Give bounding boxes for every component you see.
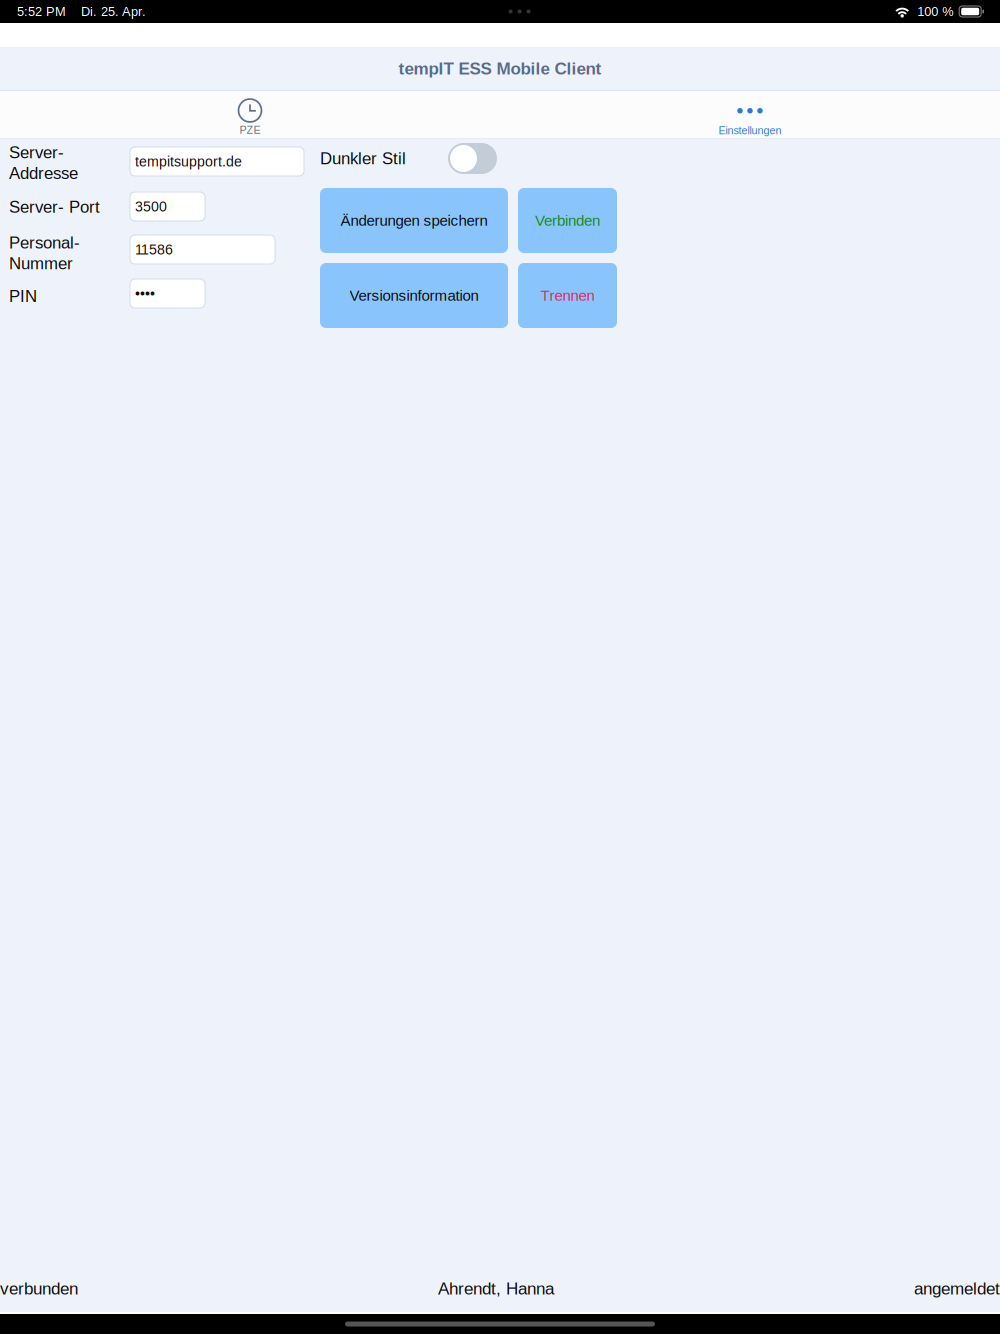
staticText: tempitsupport.de <box>135 154 242 169</box>
staticText: •••• <box>135 286 155 301</box>
staticText: 100 % <box>917 4 953 19</box>
button[interactable]: Änderungen speichern <box>320 188 508 253</box>
button[interactable]: PZE <box>188 91 312 138</box>
staticText: Personal- <box>9 233 80 252</box>
staticText: PZE <box>239 124 260 136</box>
staticText: Server- <box>9 143 64 162</box>
button[interactable]: Versionsinformation <box>320 263 508 328</box>
staticText: PIN <box>9 287 37 306</box>
staticText: 11586 <box>135 242 173 257</box>
staticText: Addresse <box>9 164 78 183</box>
staticText: angemeldet <box>914 1279 1000 1298</box>
staticText: 3500 <box>135 199 167 214</box>
button[interactable]: Trennen <box>518 263 617 328</box>
staticText: tempIT ESS Mobile Client <box>398 59 601 78</box>
staticText: Verbinden <box>535 212 600 229</box>
staticText: Änderungen speichern <box>340 212 487 229</box>
button[interactable]: Dunkler Stil <box>448 143 497 174</box>
staticText: Einstellungen <box>718 124 781 137</box>
staticText: Nummer <box>9 254 73 273</box>
staticText: 5:52 PM <box>17 4 66 19</box>
staticText: Dunkler Stil <box>320 149 406 168</box>
staticText: Server- Port <box>9 197 100 216</box>
staticText: Di. 25. Apr. <box>81 4 146 19</box>
staticText: Trennen <box>540 287 594 304</box>
button[interactable]: Einstellungen <box>688 91 812 138</box>
staticText: Versionsinformation <box>349 287 478 304</box>
button[interactable]: Verbinden <box>518 188 617 253</box>
staticText: Ahrendt, Hanna <box>438 1279 554 1298</box>
staticText: verbunden <box>0 1279 78 1298</box>
